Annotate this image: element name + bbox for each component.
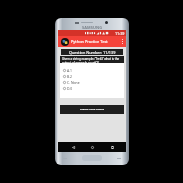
staticText: C. None [67, 80, 80, 85]
staticText: D.0 [67, 86, 73, 91]
button[interactable]: Back [68, 142, 78, 152]
button[interactable]: A.1 [63, 67, 124, 73]
staticText: Given a string example='Trek3' what is t… [62, 57, 123, 63]
staticText: SUBMIT YOUR CHOICE [80, 108, 105, 111]
button[interactable]: Home [87, 142, 97, 152]
button[interactable]: C. None [63, 79, 124, 85]
staticText: 11:39 [115, 31, 125, 36]
button[interactable]: SUBMIT YOUR CHOICE [60, 105, 124, 114]
staticText: B.2 [67, 74, 73, 79]
staticText: SAMSUNG [82, 25, 103, 30]
button[interactable]: B.2 [63, 73, 124, 79]
button[interactable]: Recents [107, 142, 117, 152]
staticText: Question Number: 11/139 [69, 50, 116, 55]
staticText: A.1 [67, 68, 73, 73]
staticText: Python Practice Test [71, 39, 108, 44]
button[interactable]: D.0 [63, 85, 124, 91]
button[interactable]: More options [121, 38, 124, 45]
